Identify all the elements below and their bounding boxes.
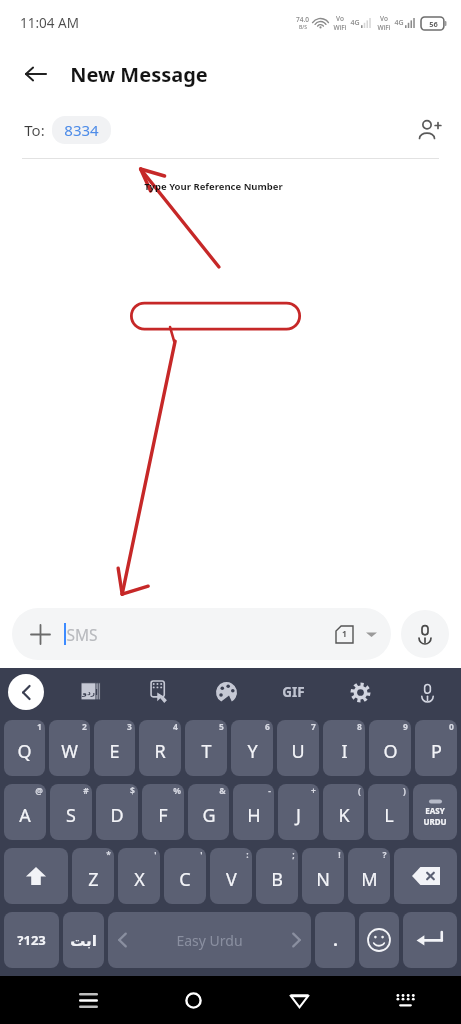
button[interactable]: 5 [185,720,227,776]
button[interactable]: Urdu [63,912,104,968]
staticText: : [246,849,249,861]
staticText: WiFi [377,23,391,32]
button[interactable]: 2 [49,720,90,776]
staticText: P [431,739,442,764]
staticText: # [83,785,89,797]
button[interactable]: ? [348,848,390,904]
button[interactable]: Back [14,52,58,96]
staticText: 74.0 [296,15,309,24]
button[interactable]: & [188,784,229,840]
button[interactable]: ' [164,848,206,904]
staticText: Q [17,739,32,764]
button[interactable]: Back [276,977,322,1023]
button[interactable]: Emoji [359,912,399,968]
staticText: ?123 [17,931,46,949]
button[interactable]: Sticker [139,672,179,712]
button[interactable]: ' [118,848,160,904]
button[interactable]: Home [170,977,216,1023]
staticText: 1 [342,628,347,640]
staticText: 56 [429,19,438,29]
button[interactable]: Voice input [401,610,449,658]
button[interactable]: 6 [231,720,273,776]
staticText: J [296,803,301,828]
staticText: ' [200,849,203,861]
staticText: 5 [219,721,224,733]
staticText: ) [403,785,406,797]
button[interactable]: 8 [323,720,365,776]
staticText: Type Your Reference Number [144,180,283,193]
button[interactable]: Hide keyboard [382,977,428,1023]
button[interactable]: 3 [94,720,135,776]
button[interactable]: Settings [340,672,380,712]
button[interactable]: 9 [369,720,411,776]
staticText: ' [154,849,157,861]
button[interactable]: # [50,784,92,840]
staticText: - [268,785,271,797]
button[interactable]: Voice typing [407,672,447,712]
button[interactable]: Add contact [405,106,453,154]
button[interactable]: 4 [139,720,181,776]
button[interactable]: Attach [26,620,54,648]
button[interactable]: Theme [206,672,246,712]
button[interactable]: Shift [4,848,68,904]
staticText: U [291,739,305,764]
button[interactable]: Recents [65,977,111,1023]
button[interactable]: Back [8,674,44,710]
button[interactable]: ! [302,848,344,904]
button[interactable]: + [278,784,319,840]
button[interactable]: 8334 [52,116,111,144]
button[interactable]: 0 [415,720,457,776]
button[interactable]: * [72,848,114,904]
staticText: . [333,929,338,951]
staticText: B/S [299,24,307,31]
staticText: EASY [425,805,445,816]
staticText: * [106,849,111,861]
staticText: Vo [380,14,388,23]
staticText: اردو [82,688,98,697]
staticText: 8 [357,721,362,733]
staticText: G [202,803,216,828]
staticText: Z [88,867,99,892]
button[interactable]: @ [4,784,46,840]
button[interactable]: ; [256,848,298,904]
button[interactable]: 1 [4,720,45,776]
staticText: V [226,867,237,892]
staticText: 8334 [64,120,99,140]
button[interactable]: $ [96,784,138,840]
staticText: B [271,867,283,892]
button[interactable]: : [210,848,252,904]
button[interactable]: Enter [403,912,457,968]
button[interactable]: Attach [12,608,391,660]
button[interactable]: - [233,784,274,840]
staticText: H [247,803,261,828]
staticText: X [134,867,145,892]
staticText: 0 [449,721,454,733]
staticText: 2 [82,721,87,733]
staticText: W [61,739,78,764]
button[interactable]: 7 [277,720,319,776]
button[interactable]: Backspace [394,848,457,904]
button[interactable]: EASY [413,784,457,840]
button[interactable]: . [315,912,355,968]
staticText: 11:04 AM [20,14,79,32]
staticText: 4G [394,18,404,28]
staticText: % [173,785,181,797]
staticText: ? [382,849,387,861]
button[interactable]: GIF [273,672,313,712]
button[interactable]: Space [108,912,311,968]
button[interactable]: % [142,784,184,840]
staticText: ; [292,849,295,861]
staticText: @ [35,785,43,797]
button[interactable]: SIM 1 [329,619,359,649]
staticText: N [316,867,330,892]
staticText: S [66,803,76,828]
button[interactable]: ) [368,784,409,840]
staticText: To: [24,120,45,140]
button[interactable]: ?123 [4,912,59,968]
staticText: 4 [173,721,178,733]
button[interactable]: Language [72,672,112,712]
staticText: 7 [311,721,316,733]
button[interactable]: ( [323,784,364,840]
staticText: C [179,867,191,892]
staticText: $ [130,785,135,797]
